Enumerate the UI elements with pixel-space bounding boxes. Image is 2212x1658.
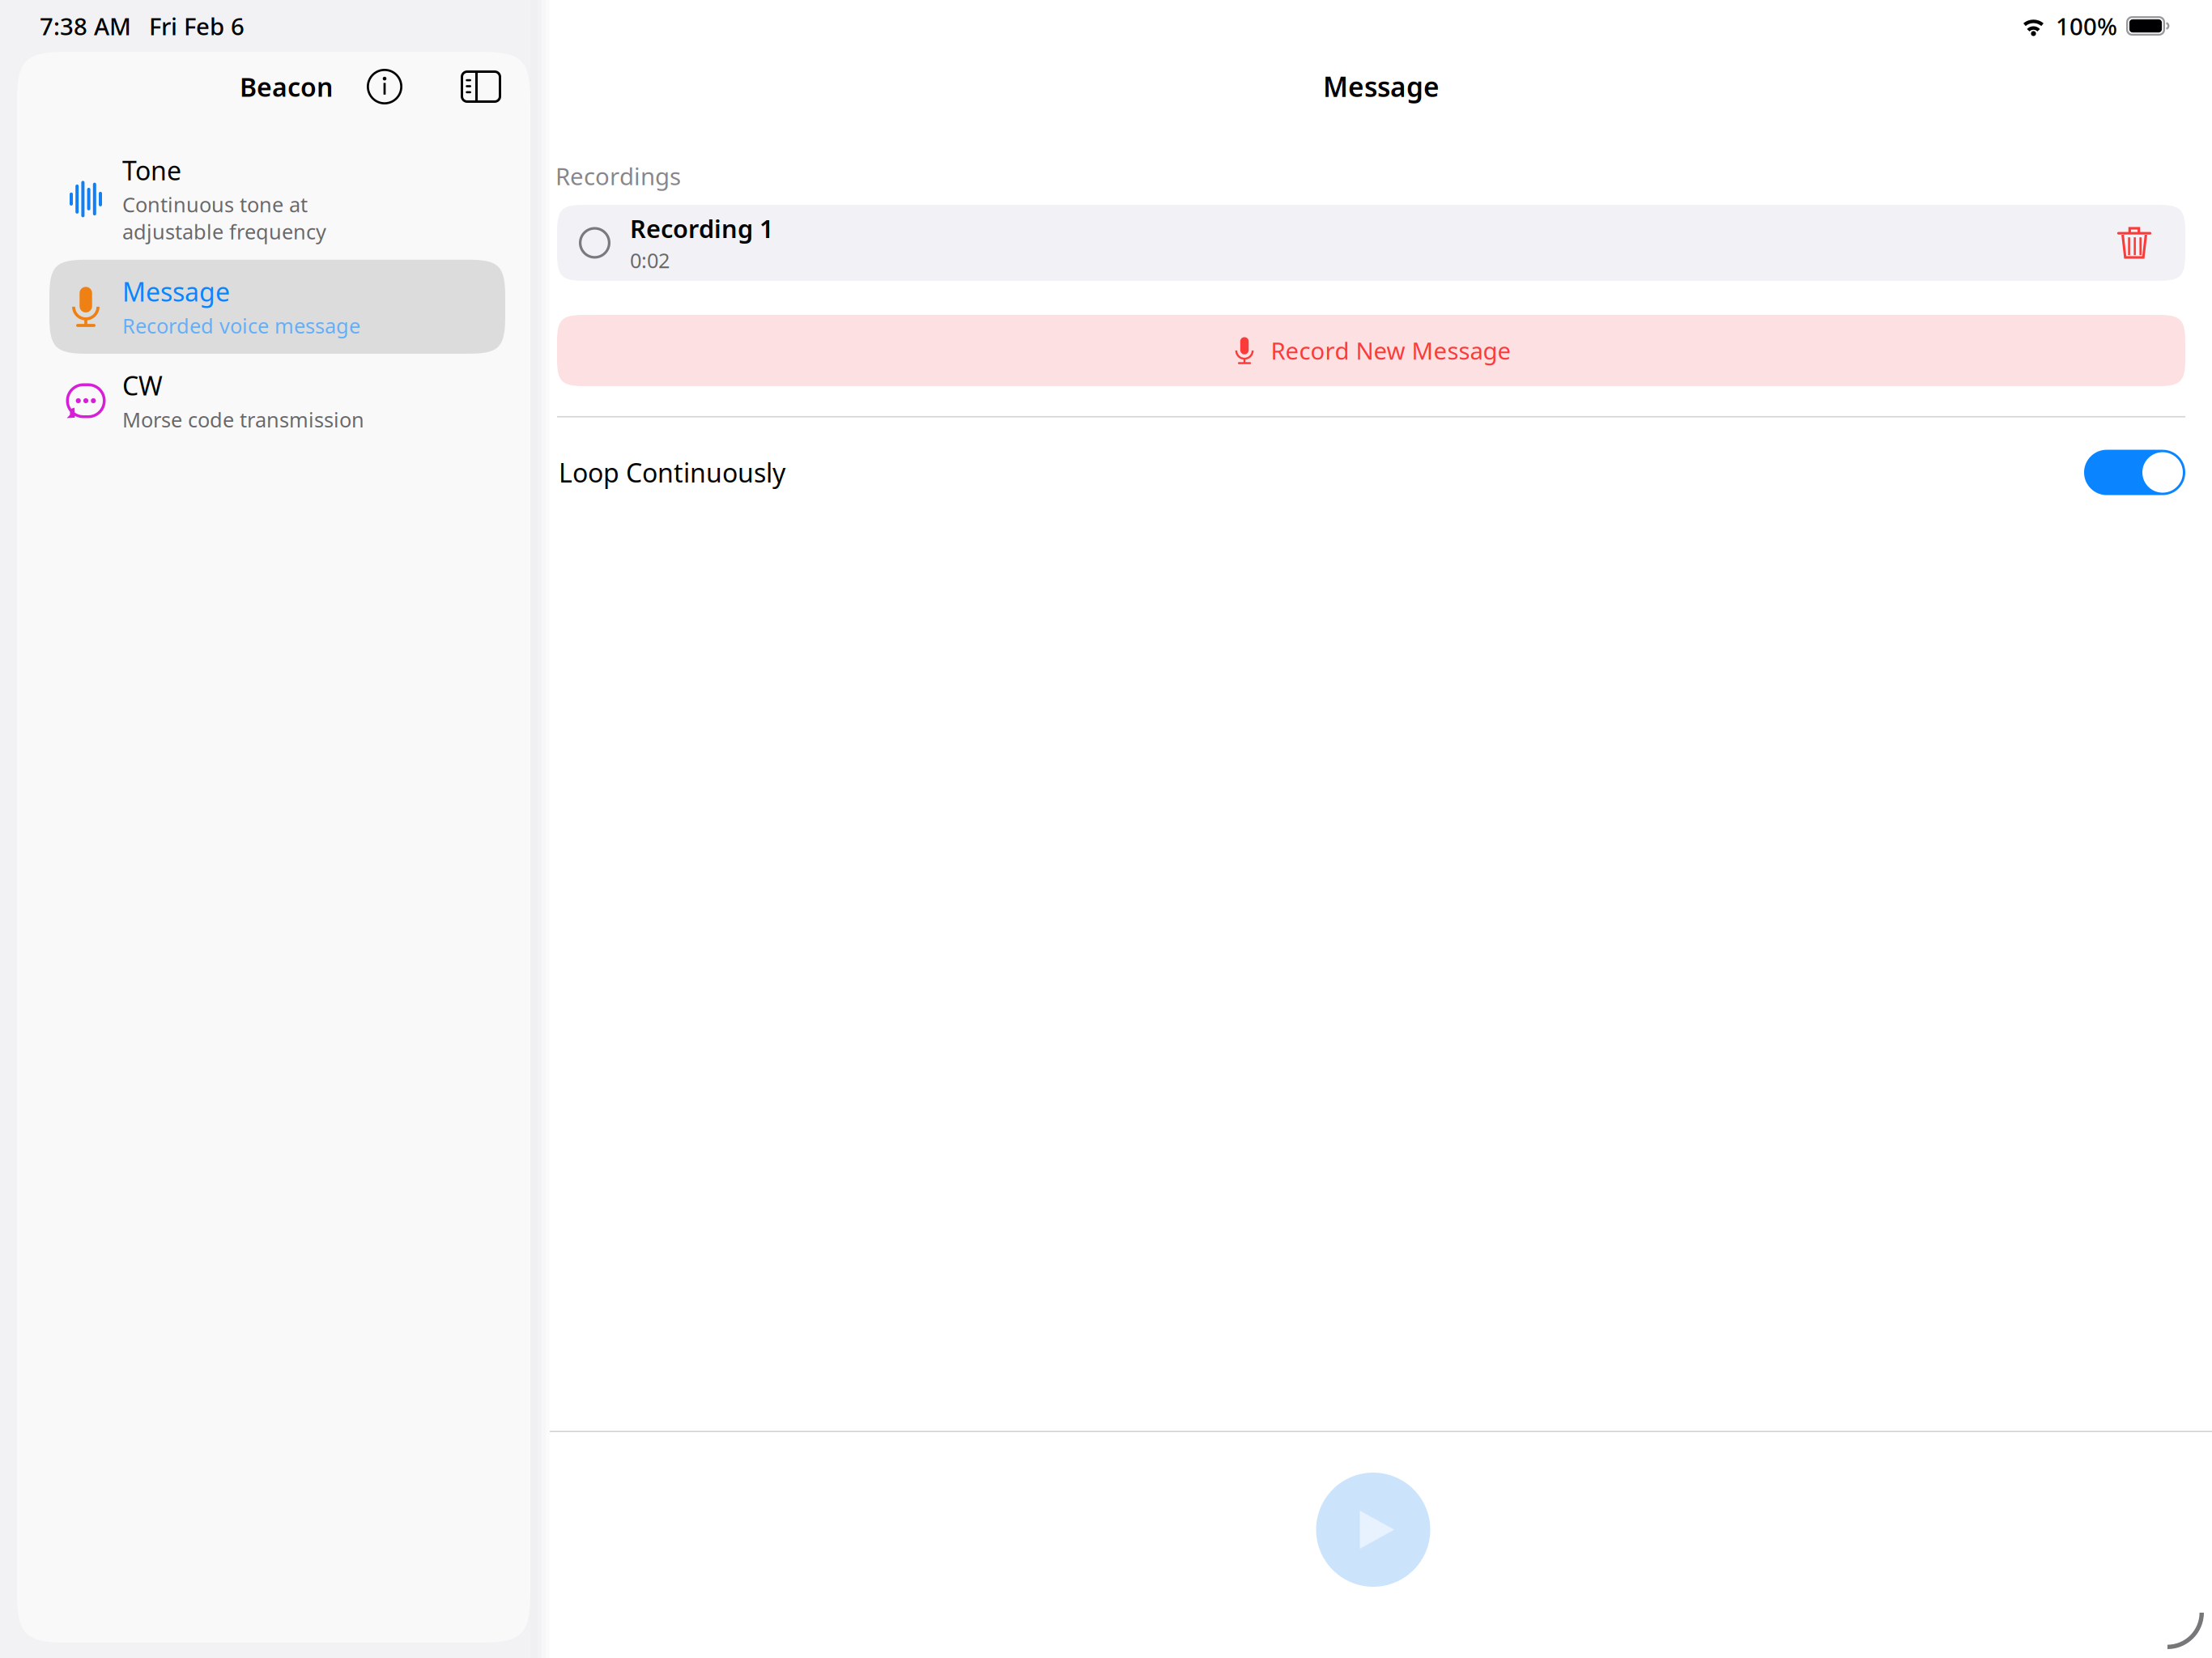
- staticText: Fri Feb 6: [149, 10, 245, 42]
- staticText: Record New Message: [1271, 335, 1511, 366]
- button[interactable]: Message: [49, 260, 505, 354]
- staticText: Message: [122, 274, 230, 309]
- staticText: 0:02: [630, 247, 670, 274]
- button[interactable]: Play: [1316, 1473, 1430, 1587]
- staticText: Recording 1: [630, 212, 774, 245]
- button[interactable]: Toggle Sidebar: [434, 59, 514, 114]
- button[interactable]: Loop Continuously: [2084, 450, 2185, 495]
- staticText: Recorded voice message: [122, 312, 360, 339]
- staticText: Message: [1323, 69, 1440, 104]
- staticText: Recordings: [555, 160, 681, 192]
- staticText: CW: [122, 368, 163, 403]
- staticText: Tone: [122, 153, 181, 187]
- button[interactable]: About Beacon: [333, 57, 434, 116]
- staticText: 7:38 AM: [40, 10, 131, 42]
- staticText: Beacon: [240, 69, 333, 104]
- button[interactable]: Recording 1: [557, 205, 2185, 281]
- button[interactable]: Tone: [49, 138, 505, 260]
- staticText: Continuous tone at adjustable frequency: [122, 191, 326, 245]
- staticText: Loop Continuously: [559, 455, 785, 490]
- button[interactable]: CW: [49, 354, 505, 448]
- staticText: Morse code transmission: [122, 406, 364, 433]
- button[interactable]: Record New Message: [557, 315, 2185, 386]
- staticText: 100%: [2056, 10, 2117, 42]
